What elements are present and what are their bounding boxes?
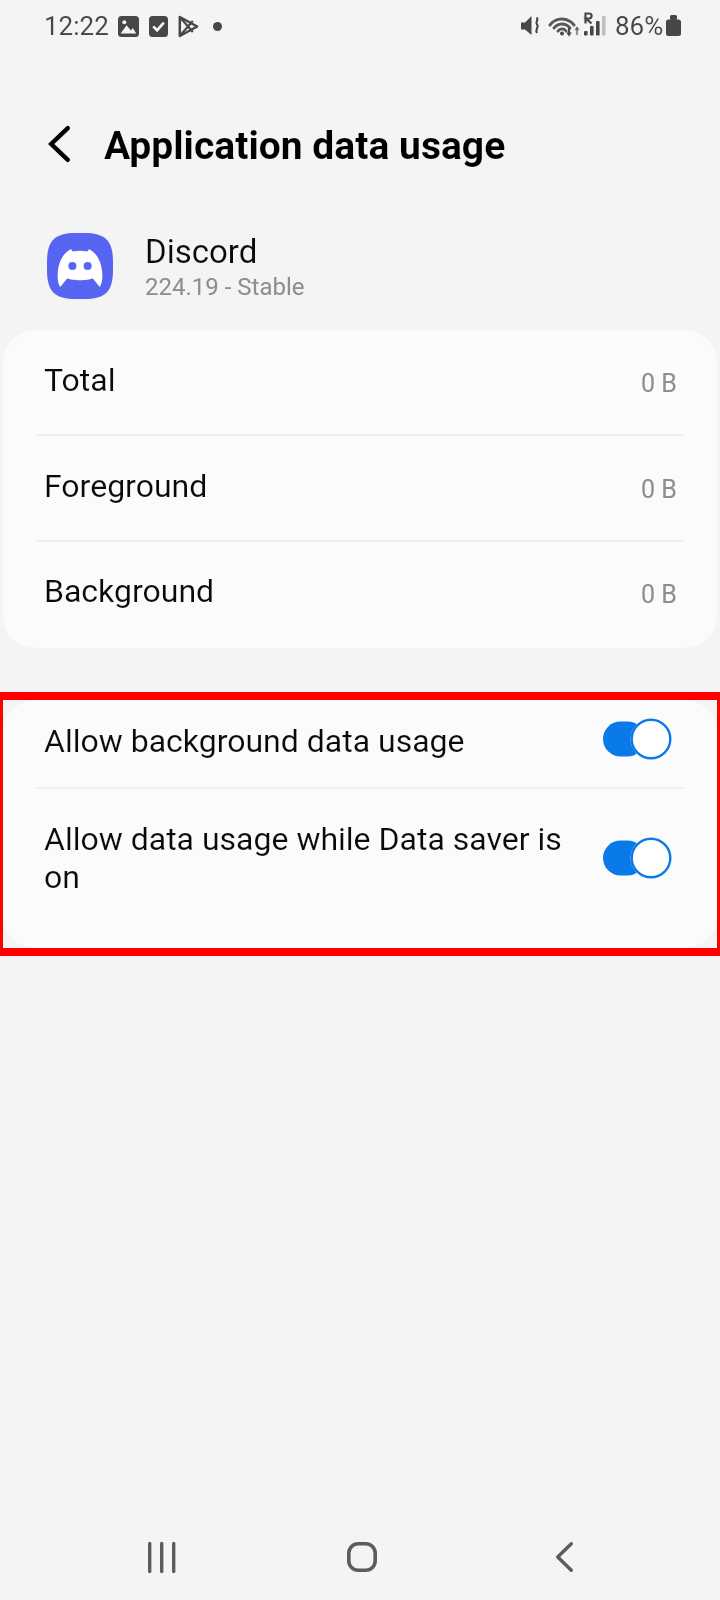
staticText: 86% (615, 11, 664, 41)
button[interactable]: Navigate up (9, 94, 109, 194)
button[interactable]: Background (3, 542, 717, 648)
button[interactable]: Total (3, 330, 717, 434)
staticText: Total (44, 361, 116, 399)
button[interactable]: Recent apps (111, 1519, 211, 1595)
staticText: 0 B (641, 369, 677, 398)
button[interactable]: Back (514, 1519, 614, 1595)
staticText: Foreground (44, 467, 208, 505)
button[interactable]: Allow background data usage (3, 700, 717, 787)
staticText: 0 B (641, 475, 677, 504)
staticText: Allow data usage while Data saver is on (44, 820, 584, 896)
staticText: 224.19 - Stable (145, 273, 305, 301)
button[interactable]: Allow data usage while Data saver is on (3, 789, 717, 948)
button[interactable]: Foreground (3, 436, 717, 540)
staticText: Background (44, 572, 215, 610)
staticText: Allow background data usage (44, 722, 584, 760)
staticText: Discord (145, 232, 258, 271)
staticText: Application data usage (104, 123, 506, 169)
staticText: 0 B (641, 580, 677, 609)
staticText: 12:22 (44, 11, 109, 41)
button[interactable]: Toggle (603, 835, 670, 881)
button[interactable]: Toggle (603, 716, 670, 762)
button[interactable]: Home (312, 1519, 412, 1595)
